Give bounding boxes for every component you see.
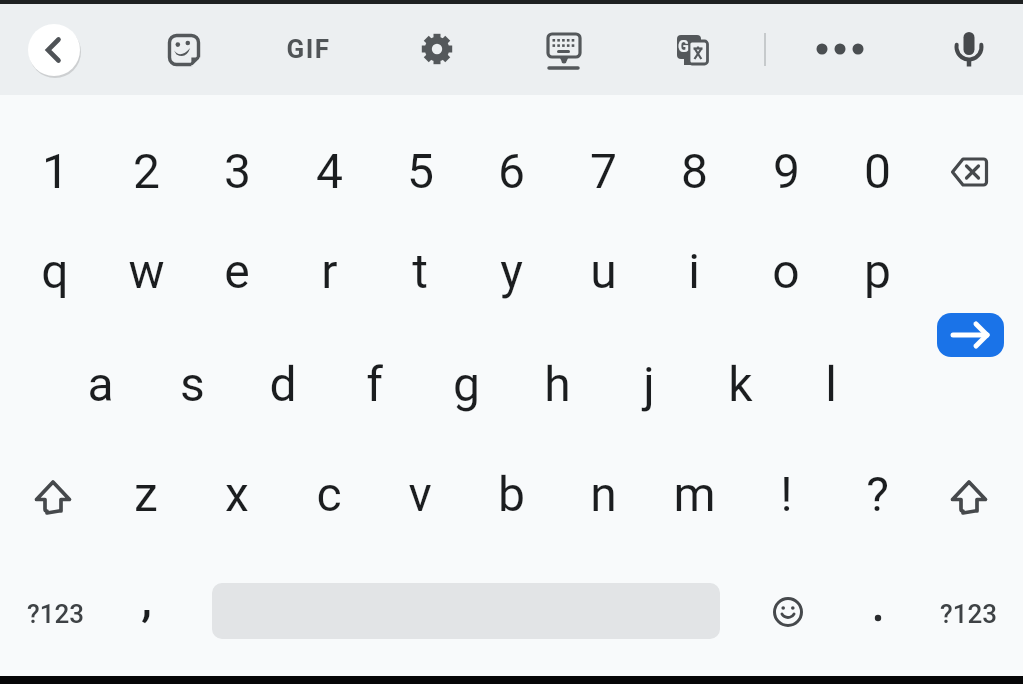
button[interactable]: u xyxy=(559,221,647,321)
button[interactable]: ! xyxy=(742,444,830,544)
staticText: s xyxy=(180,356,205,412)
button[interactable]: 2 xyxy=(102,121,190,221)
button[interactable] xyxy=(18,458,88,538)
button[interactable]: o xyxy=(742,221,830,321)
staticText: g xyxy=(453,356,480,412)
staticText: G xyxy=(678,37,689,56)
button[interactable] xyxy=(947,24,991,72)
button[interactable]: x xyxy=(193,444,281,544)
button[interactable]: r xyxy=(285,221,373,321)
button[interactable] xyxy=(28,24,80,76)
staticText: u xyxy=(590,243,617,299)
staticText: 4 xyxy=(316,143,343,199)
staticText: ?123 xyxy=(27,599,84,629)
staticText: 2 xyxy=(133,143,160,199)
button[interactable] xyxy=(164,30,204,70)
staticText: p xyxy=(864,243,891,299)
staticText: 1 xyxy=(42,143,69,199)
button[interactable]: ? xyxy=(833,444,921,544)
staticText: v xyxy=(408,466,432,522)
button[interactable]: 5 xyxy=(376,121,464,221)
button[interactable] xyxy=(758,577,818,647)
staticText: a xyxy=(87,356,114,412)
staticText: t xyxy=(412,243,428,299)
staticText: GIF xyxy=(286,34,331,64)
staticText: r xyxy=(321,243,338,299)
button[interactable]: n xyxy=(559,444,647,544)
staticText: f xyxy=(366,356,383,412)
staticText: z xyxy=(134,466,158,522)
staticText: ? xyxy=(866,466,889,522)
staticText: w xyxy=(128,243,165,299)
staticText: ! xyxy=(780,466,793,522)
button[interactable]: 4 xyxy=(285,121,373,221)
button[interactable]: p xyxy=(833,221,921,321)
button[interactable]: g xyxy=(422,334,510,434)
button[interactable]: e xyxy=(193,221,281,321)
staticText: 7 xyxy=(590,143,617,199)
button[interactable] xyxy=(940,137,1000,207)
button[interactable]: t xyxy=(376,221,464,321)
button[interactable]: 6 xyxy=(467,121,555,221)
staticText: 0 xyxy=(864,143,891,199)
button[interactable]: G xyxy=(672,30,712,70)
staticText: o xyxy=(772,243,800,299)
button[interactable] xyxy=(807,29,873,69)
button[interactable]: 9 xyxy=(742,121,830,221)
button[interactable]: i xyxy=(650,221,738,321)
button[interactable] xyxy=(542,28,586,72)
button[interactable]: ?123 xyxy=(11,564,99,664)
button[interactable]: d xyxy=(239,334,327,434)
staticText: 8 xyxy=(681,143,708,199)
staticText: d xyxy=(269,356,297,412)
button[interactable]: l xyxy=(787,334,875,434)
button[interactable] xyxy=(417,29,457,69)
staticText: i xyxy=(688,243,700,299)
button[interactable]: GIF xyxy=(268,29,348,69)
button[interactable]: w xyxy=(102,221,190,321)
staticText: n xyxy=(590,466,617,522)
staticText: l xyxy=(825,356,837,412)
staticText: , xyxy=(141,571,152,627)
button[interactable]: a xyxy=(56,334,144,434)
button[interactable]: 8 xyxy=(650,121,738,221)
button[interactable]: v xyxy=(376,444,464,544)
button[interactable] xyxy=(937,313,1004,357)
button[interactable] xyxy=(848,577,908,647)
button[interactable]: z xyxy=(102,444,190,544)
staticText: ?123 xyxy=(940,599,997,629)
button[interactable]: 3 xyxy=(193,121,281,221)
staticText: b xyxy=(498,466,525,522)
button[interactable]: m xyxy=(650,444,738,544)
button[interactable]: ?123 xyxy=(924,564,1012,664)
staticText: y xyxy=(500,243,523,299)
staticText: q xyxy=(41,243,69,299)
button[interactable]: f xyxy=(330,334,418,434)
button[interactable]: j xyxy=(605,334,693,434)
staticText: k xyxy=(728,356,753,412)
button[interactable]: 7 xyxy=(559,121,647,221)
staticText: e xyxy=(224,243,250,299)
staticText: 5 xyxy=(407,143,434,199)
button[interactable]: k xyxy=(696,334,784,434)
button[interactable]: s xyxy=(148,334,236,434)
staticText: x xyxy=(225,466,249,522)
staticText: m xyxy=(673,466,716,522)
button[interactable]: y xyxy=(467,221,555,321)
staticText: j xyxy=(643,356,655,412)
button[interactable]: h xyxy=(513,334,601,434)
button[interactable]: , xyxy=(102,549,190,649)
staticText: c xyxy=(316,466,342,522)
staticText: 9 xyxy=(773,143,800,199)
button[interactable]: 0 xyxy=(833,121,921,221)
staticText: 6 xyxy=(498,143,525,199)
staticText: h xyxy=(544,356,571,412)
button[interactable]: b xyxy=(467,444,555,544)
button[interactable]: c xyxy=(285,444,373,544)
button[interactable] xyxy=(934,458,1004,538)
staticText: 3 xyxy=(224,143,251,199)
button[interactable]: 1 xyxy=(11,121,99,221)
button[interactable]: q xyxy=(11,221,99,321)
